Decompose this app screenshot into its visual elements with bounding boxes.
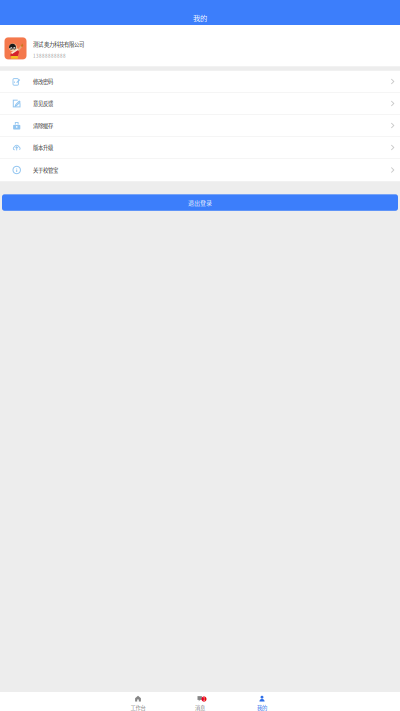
button[interactable]: 工作台: [107, 691, 169, 711]
button[interactable]: 我的: [231, 691, 293, 711]
staticText: 清除缓存: [33, 122, 53, 129]
staticText: 我的: [193, 12, 207, 23]
staticText: 测试 奥力科技有限公司: [33, 40, 84, 48]
button[interactable]: 意见反馈: [0, 93, 400, 115]
staticText: 修改密码: [33, 78, 53, 85]
button[interactable]: 关于校管宝: [0, 159, 400, 182]
staticText: 版本升级: [33, 144, 53, 151]
staticText: 意见反馈: [33, 100, 53, 107]
button[interactable]: 修改密码: [0, 71, 400, 93]
button[interactable]: 1: [169, 691, 231, 711]
button[interactable]: 退出登录: [2, 194, 398, 211]
staticText: 我的: [257, 704, 267, 711]
staticText: 工作台: [130, 704, 145, 711]
button[interactable]: 清除缓存: [0, 115, 400, 137]
staticText: 关于校管宝: [33, 166, 58, 174]
staticText: 退出登录: [188, 198, 212, 207]
staticText: 13888888888: [33, 52, 66, 59]
button[interactable]: 版本升级: [0, 137, 400, 159]
staticText: 1: [203, 696, 205, 702]
staticText: 消息: [195, 704, 205, 711]
